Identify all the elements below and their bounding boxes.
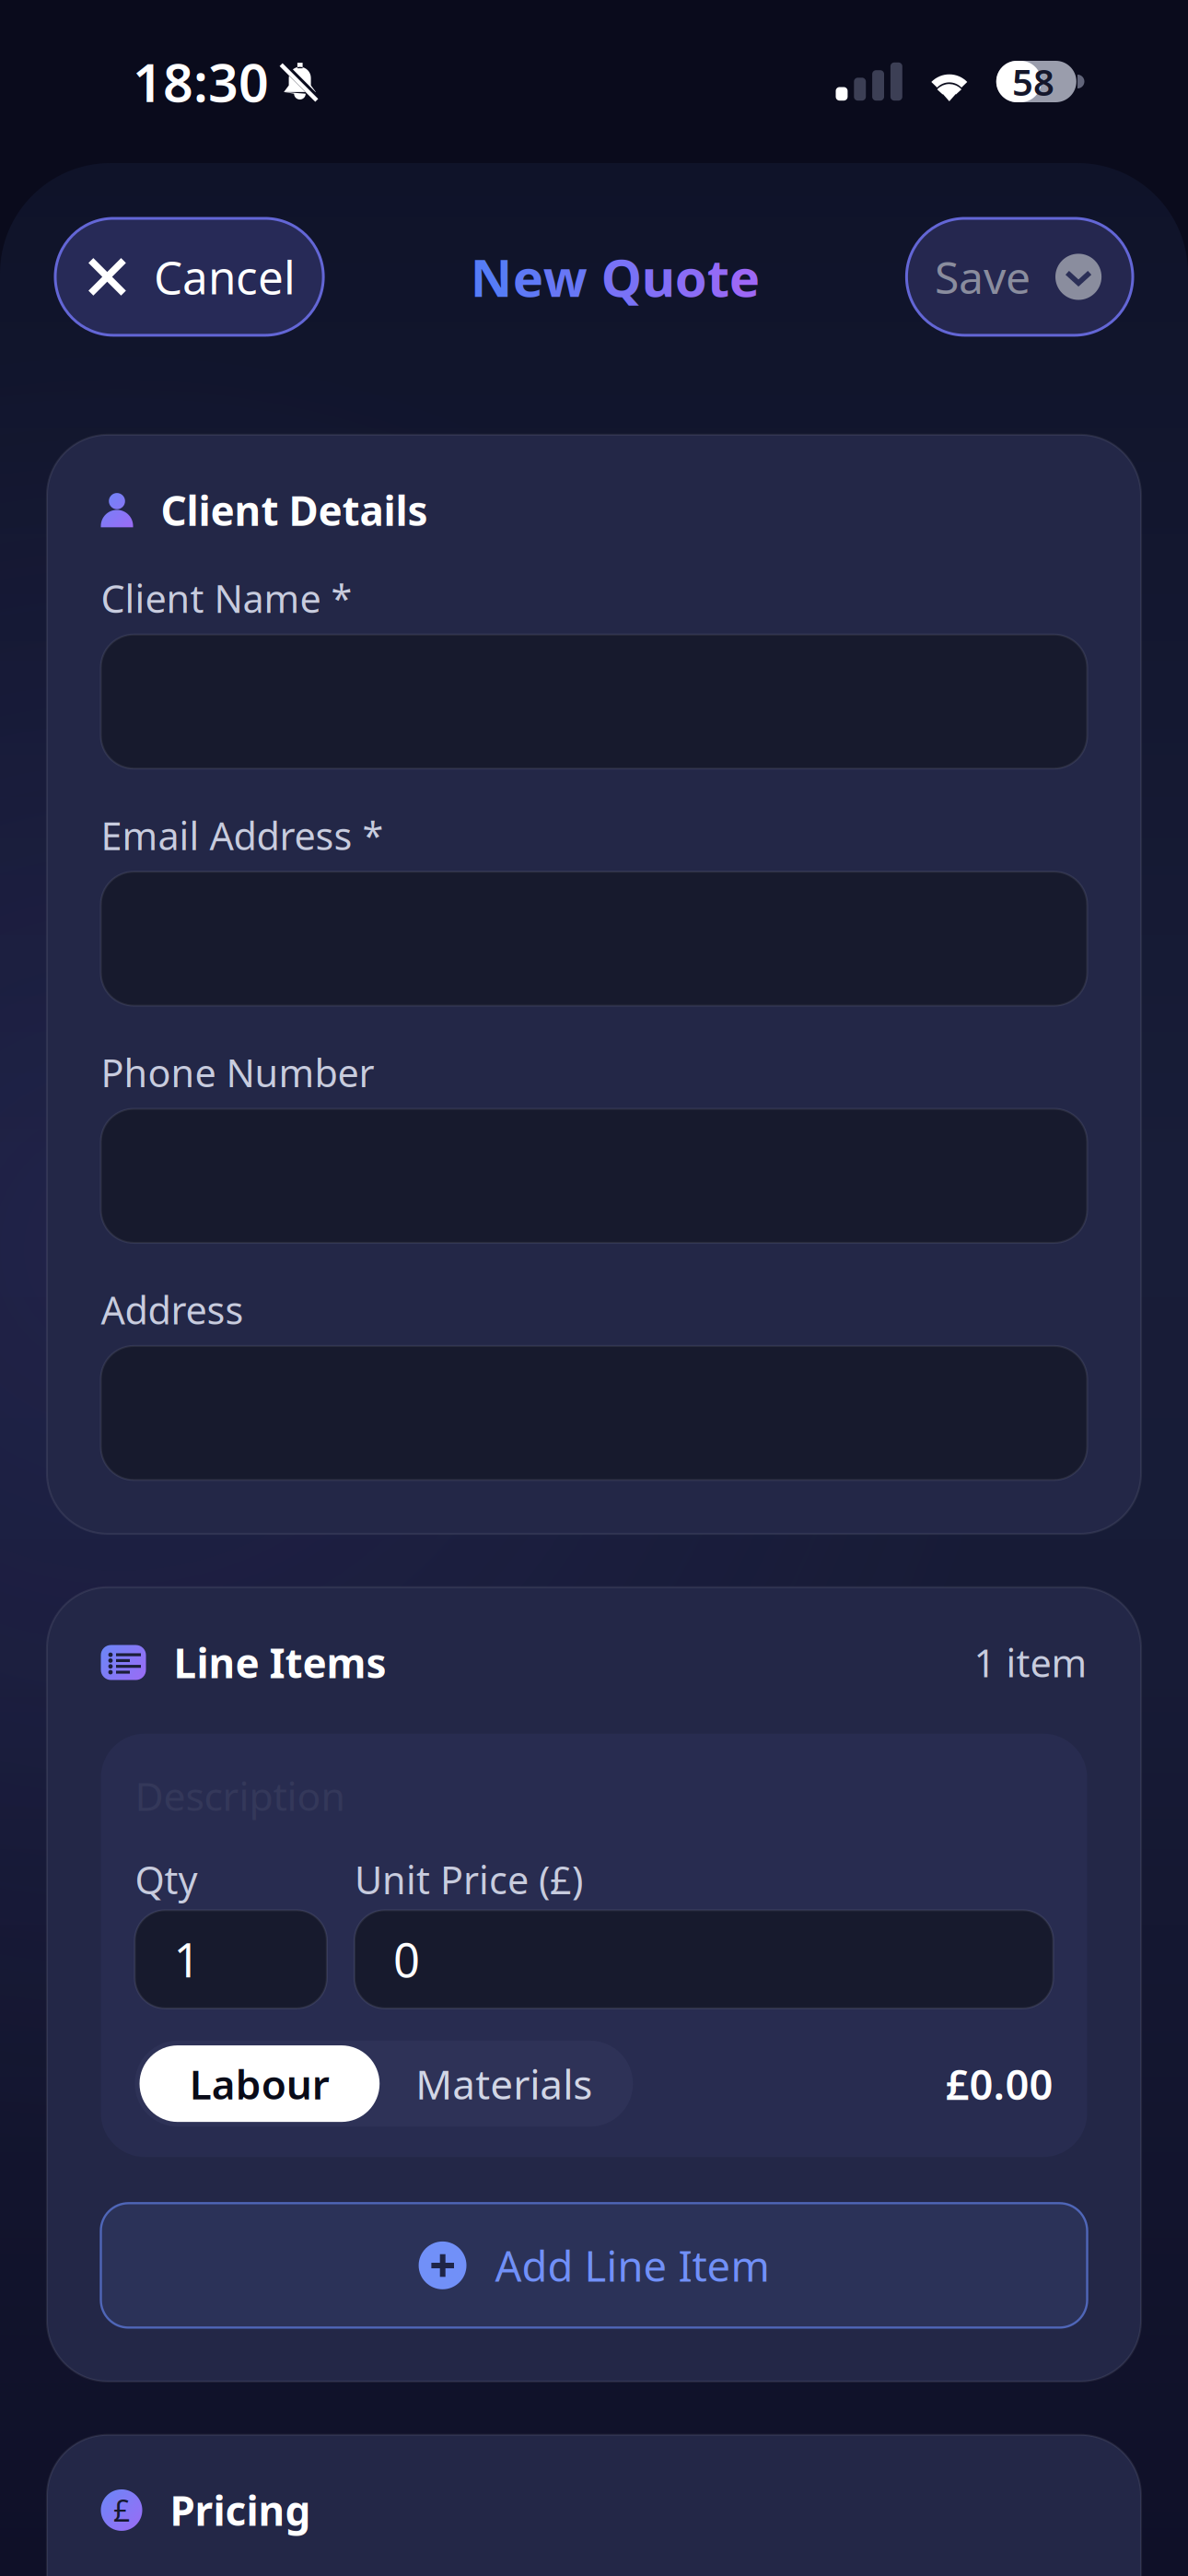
staticText: 1 bbox=[174, 1928, 200, 1990]
staticText: Materials bbox=[416, 2057, 592, 2111]
staticText: o bbox=[675, 243, 707, 311]
staticText: w bbox=[543, 243, 587, 311]
staticText: N bbox=[470, 243, 513, 311]
staticText: Client Details bbox=[161, 483, 428, 537]
staticText: Address bbox=[101, 1284, 244, 1335]
staticText: e bbox=[729, 243, 760, 311]
staticText: 1 item bbox=[974, 1637, 1087, 1688]
staticText: t bbox=[707, 243, 729, 311]
staticText: Unit Price (£) bbox=[354, 1854, 583, 1905]
staticText: Email Address * bbox=[101, 810, 384, 861]
button[interactable]: Labour bbox=[140, 2045, 380, 2122]
staticText: Description bbox=[135, 1770, 345, 1822]
staticText: Line Items bbox=[174, 1636, 386, 1689]
staticText: Labour bbox=[190, 2057, 330, 2111]
staticText: Save bbox=[935, 247, 1031, 306]
staticText: Add Line Item bbox=[495, 2238, 769, 2293]
button[interactable]: Add Line Item bbox=[101, 2203, 1087, 2328]
staticText: £0.00 bbox=[945, 2056, 1053, 2111]
staticText: Pricing bbox=[170, 2483, 311, 2537]
button[interactable]: Save bbox=[907, 218, 1133, 335]
staticText: 58 bbox=[1012, 57, 1054, 106]
staticText: u bbox=[642, 243, 675, 311]
staticText: Qty bbox=[135, 1854, 197, 1905]
button[interactable]: Materials bbox=[380, 2045, 628, 2122]
staticText: e bbox=[513, 243, 543, 311]
staticText: Q bbox=[601, 243, 642, 311]
staticText: Client Name * bbox=[101, 573, 352, 623]
staticText: 0 bbox=[393, 1928, 420, 1990]
staticText: Cancel bbox=[154, 247, 296, 307]
staticText: £ bbox=[113, 2491, 130, 2530]
staticText: 18:30 bbox=[133, 46, 269, 117]
staticText: Phone Number bbox=[101, 1047, 374, 1098]
button[interactable]: Cancel bbox=[55, 218, 323, 335]
